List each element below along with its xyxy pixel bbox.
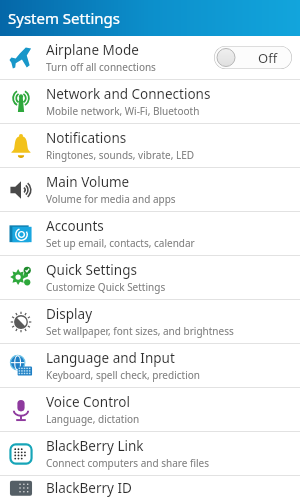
- staticText: BlackBerry ID: [46, 479, 132, 497]
- button[interactable]: Notifications: [0, 124, 300, 167]
- staticText: Network and Connections: [46, 85, 211, 103]
- staticText: Turn off all connections: [46, 60, 156, 74]
- staticText: Voice Control: [46, 393, 130, 411]
- staticText: Set up email, contacts, calendar: [46, 236, 195, 250]
- button[interactable]: Quick Settings: [0, 256, 300, 299]
- staticText: Off: [258, 49, 278, 67]
- button[interactable]: BlackBerry ID: [0, 476, 300, 500]
- button[interactable]: Airplane mode toggle, Off: [214, 46, 292, 69]
- staticText: Display: [46, 305, 93, 323]
- button[interactable]: Airplane Mode: [0, 36, 300, 79]
- button[interactable]: Display: [0, 300, 300, 343]
- staticText: Language and Input: [46, 349, 175, 367]
- staticText: Notifications: [46, 129, 127, 147]
- button[interactable]: Network and Connections: [0, 80, 300, 123]
- button[interactable]: Voice Control: [0, 388, 300, 431]
- staticText: Keyboard, spell check, prediction: [46, 368, 200, 382]
- staticText: Mobile network, Wi-Fi, Bluetooth: [46, 104, 200, 118]
- staticText: Main Volume: [46, 173, 130, 191]
- staticText: Quick Settings: [46, 261, 137, 279]
- staticText: BlackBerry Link: [46, 437, 144, 455]
- staticText: Accounts: [46, 217, 104, 235]
- staticText: Customize Quick Settings: [46, 280, 166, 294]
- staticText: Language, dictation: [46, 412, 140, 426]
- staticText: Ringtones, sounds, vibrate, LED: [46, 148, 195, 162]
- button[interactable]: Main Volume: [0, 168, 300, 211]
- staticText: Airplane Mode: [46, 41, 139, 59]
- staticText: Connect computers and share files: [46, 456, 209, 470]
- button[interactable]: Accounts: [0, 212, 300, 255]
- staticText: System Settings: [8, 8, 120, 28]
- button[interactable]: Language and Input: [0, 344, 300, 387]
- staticText: Set wallpaper, font sizes, and brightnes…: [46, 324, 234, 338]
- button[interactable]: BlackBerry Link: [0, 432, 300, 475]
- staticText: Volume for media and apps: [46, 192, 176, 206]
